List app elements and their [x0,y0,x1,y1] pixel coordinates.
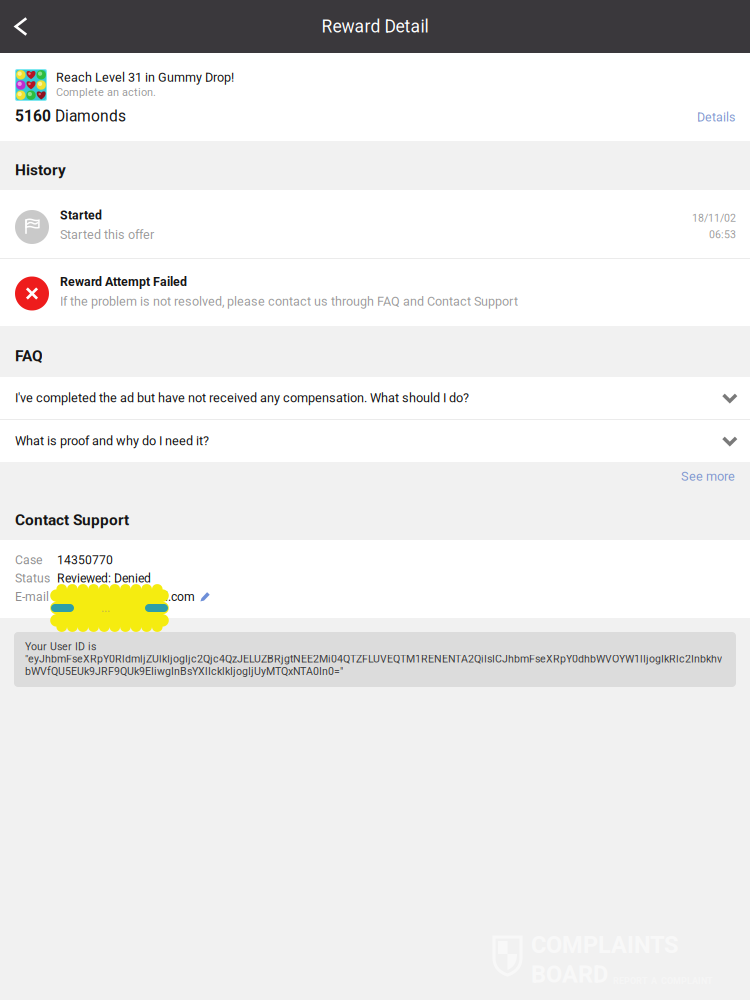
staticText: E-mail [15,590,49,604]
staticText: Your User ID is [25,640,96,653]
staticText: Details [697,110,735,124]
staticText: See more [681,469,735,484]
staticText: History [15,161,66,179]
staticText: 06:53 [709,228,736,241]
staticText: I've completed the ad but have not recei… [15,391,469,405]
staticText: Contact Support [15,511,129,529]
staticText: Diamonds [55,107,126,125]
staticText: Reward Attempt Failed [60,274,187,289]
staticText: BOARD [531,961,608,988]
staticText: Case [15,553,42,567]
button[interactable]: Started [0,190,750,258]
staticText: "eyJhbmFseXRpY0RldmljZUlkIjogIjc2Qjc4QzJ… [25,653,722,665]
staticText: Reviewed: Denied [57,571,151,586]
staticText: 14350770 [57,553,113,567]
staticText: Status [15,571,50,586]
button[interactable]: Reward Attempt Failed [0,259,750,326]
staticText: 18/11/02 [692,212,736,224]
button[interactable]: Details [693,106,739,128]
staticText: If the problem is not resolved, please c… [60,294,518,309]
button[interactable]: I've completed the ad but have not recei… [0,377,750,419]
staticText: What is proof and why do I need it? [15,434,209,448]
staticText: ... [101,600,110,615]
staticText: Started [60,208,102,222]
staticText: Reach Level 31 in Gummy Drop! [56,70,234,85]
staticText: Reward Detail [321,16,428,37]
staticText: Started this offer [60,227,154,242]
staticText: 5160 [15,107,55,125]
staticText: FAQ [15,347,43,365]
button[interactable]: Edit e-mail [200,592,210,602]
staticText: jsmith19842@gmail.com [57,590,195,604]
staticText: bWVfQU5EUk9JRF9QUk9EIiwgInBsYXlIcklkIjog… [25,665,343,678]
button[interactable]: Back [0,0,42,53]
staticText: Complete an action. [56,86,156,99]
button[interactable]: See more [675,466,741,487]
button[interactable]: What is proof and why do I need it? [0,420,750,462]
